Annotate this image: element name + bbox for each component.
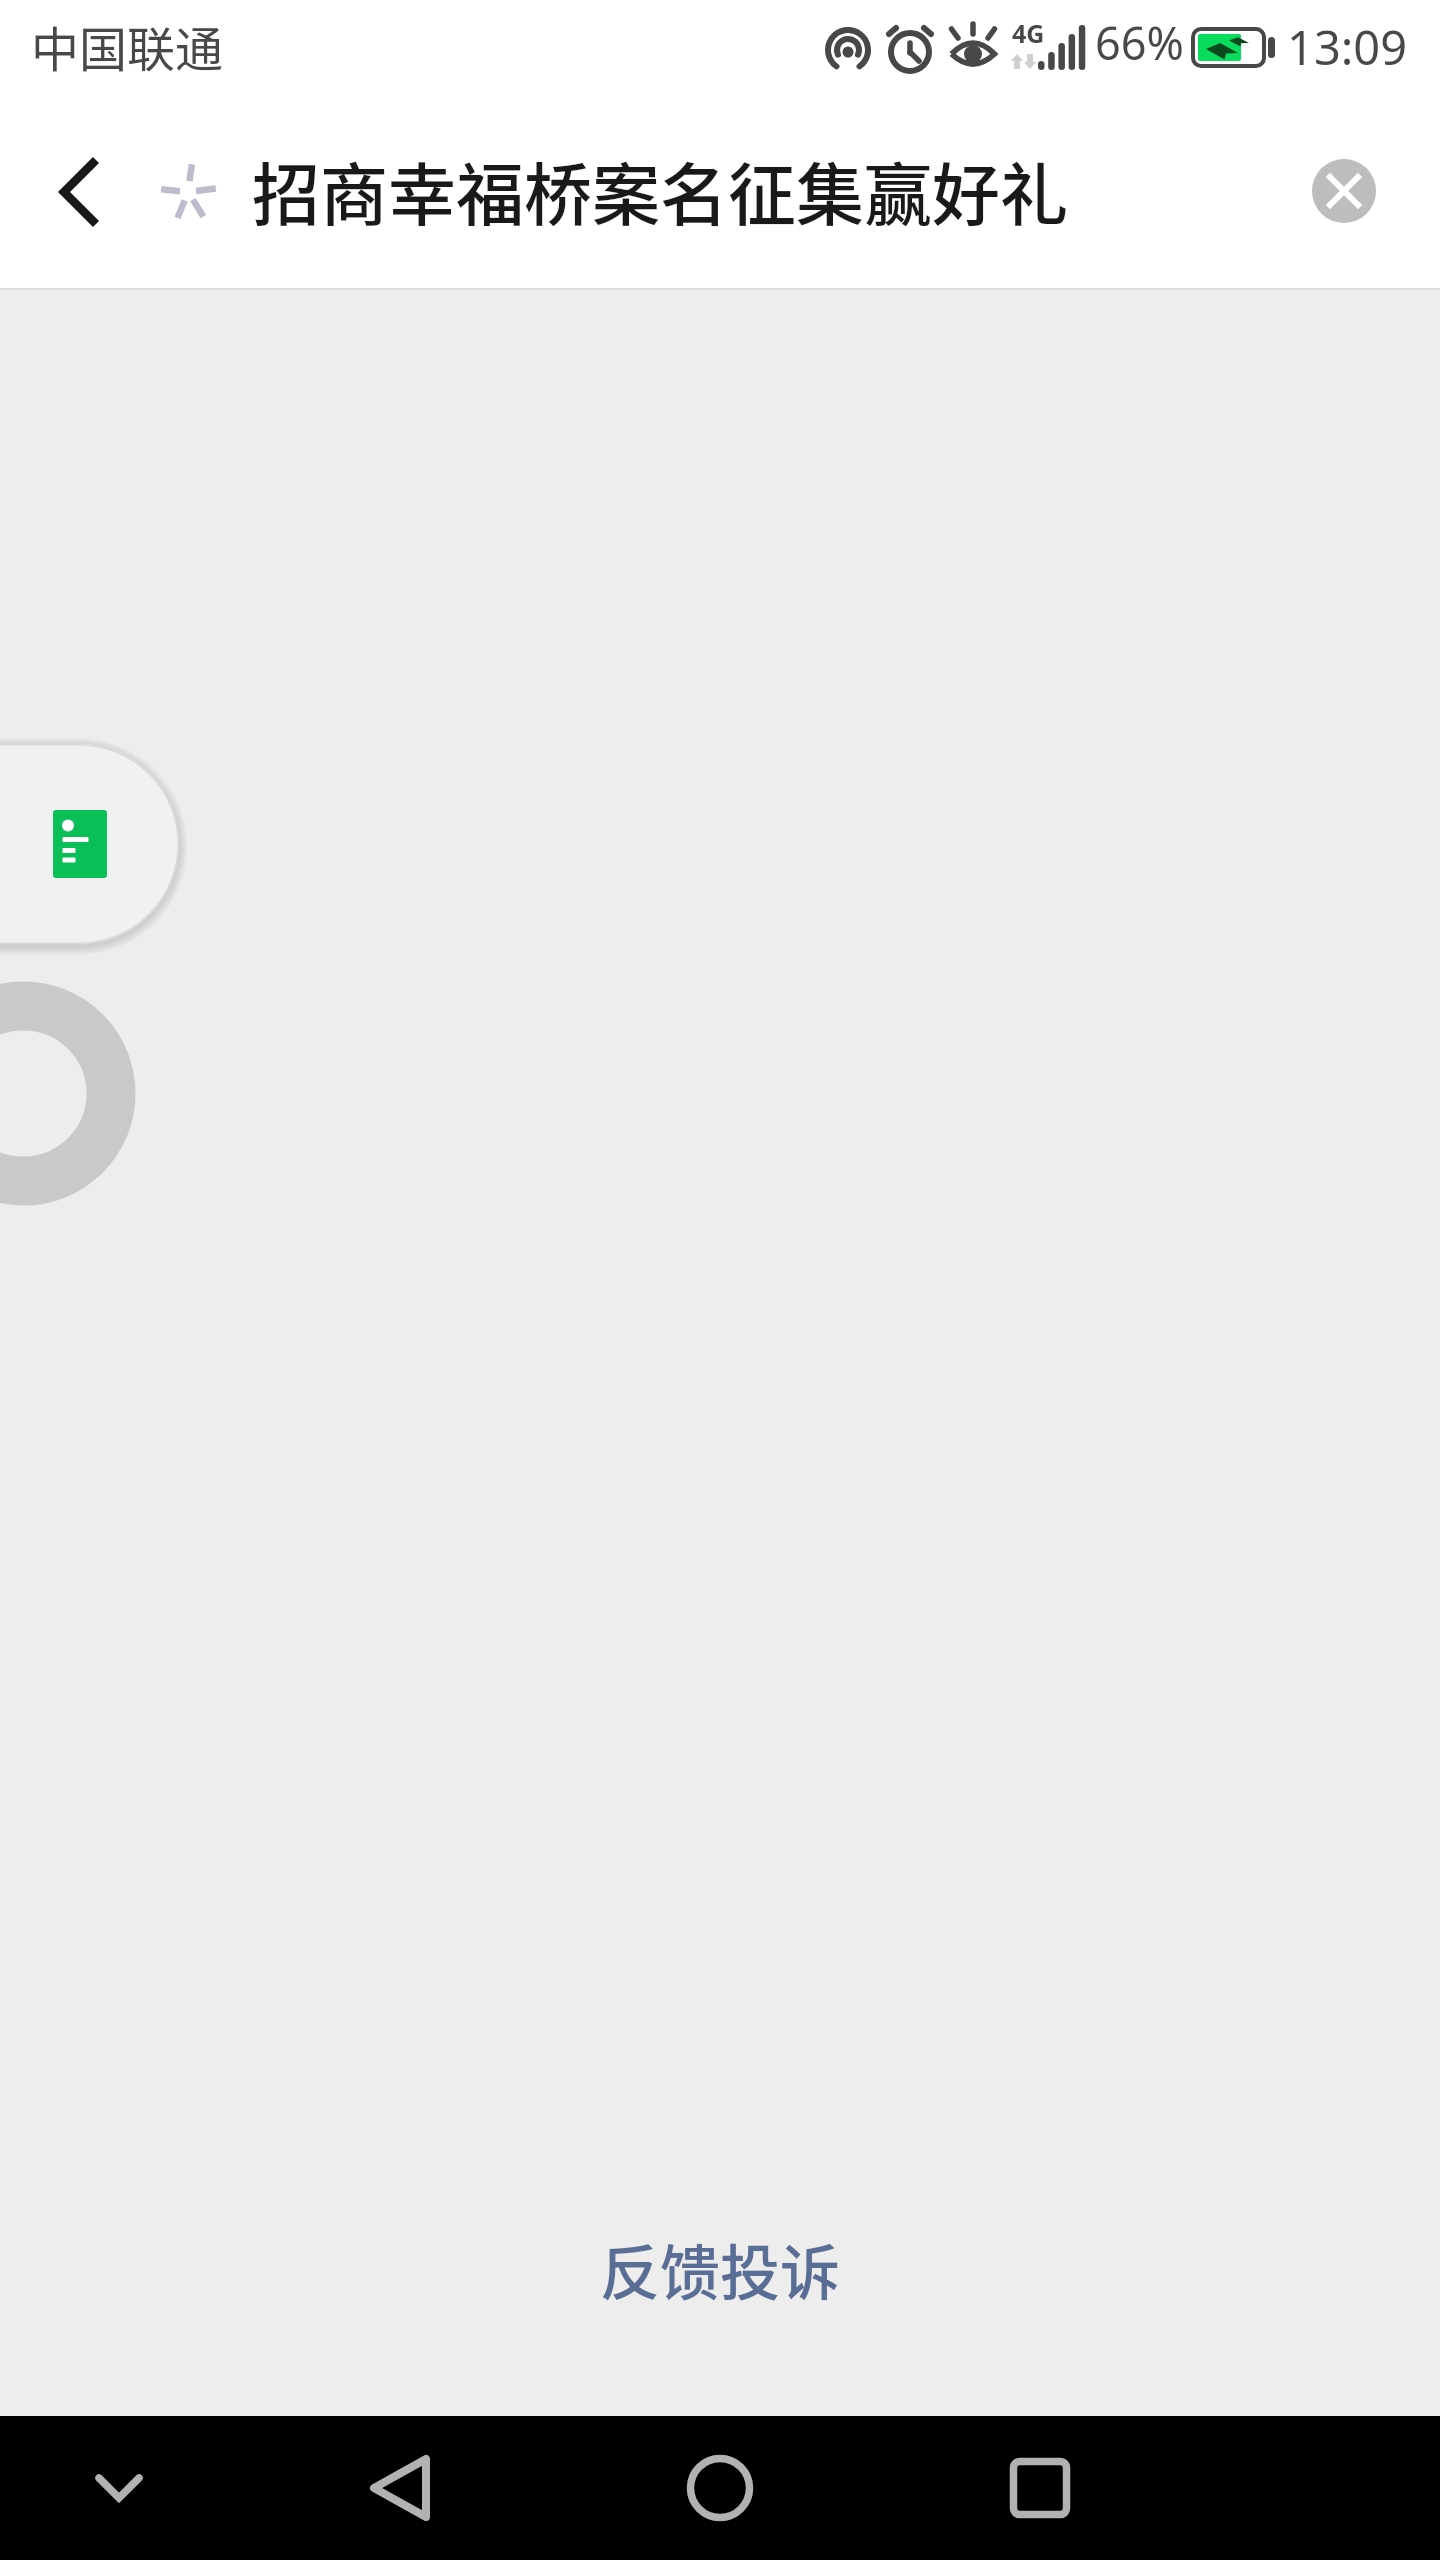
staticText: 13:09 [1287,15,1408,79]
button[interactable]: Back [320,2416,480,2560]
button[interactable]: Back [18,132,138,252]
button[interactable]: Home [640,2416,800,2560]
button[interactable]: Recent apps [960,2416,1120,2560]
staticText: 中国联通 [31,11,224,81]
staticText: 4G [1012,16,1045,50]
staticText: 66% [1095,12,1184,73]
staticText: 反馈投诉 [600,2225,840,2312]
staticText: 招商幸福桥案名征集赢好礼 [252,141,1069,239]
button[interactable]: Close [1272,119,1416,263]
button[interactable]: 反馈投诉 [600,2225,840,2312]
button[interactable]: Hide [39,2416,199,2560]
